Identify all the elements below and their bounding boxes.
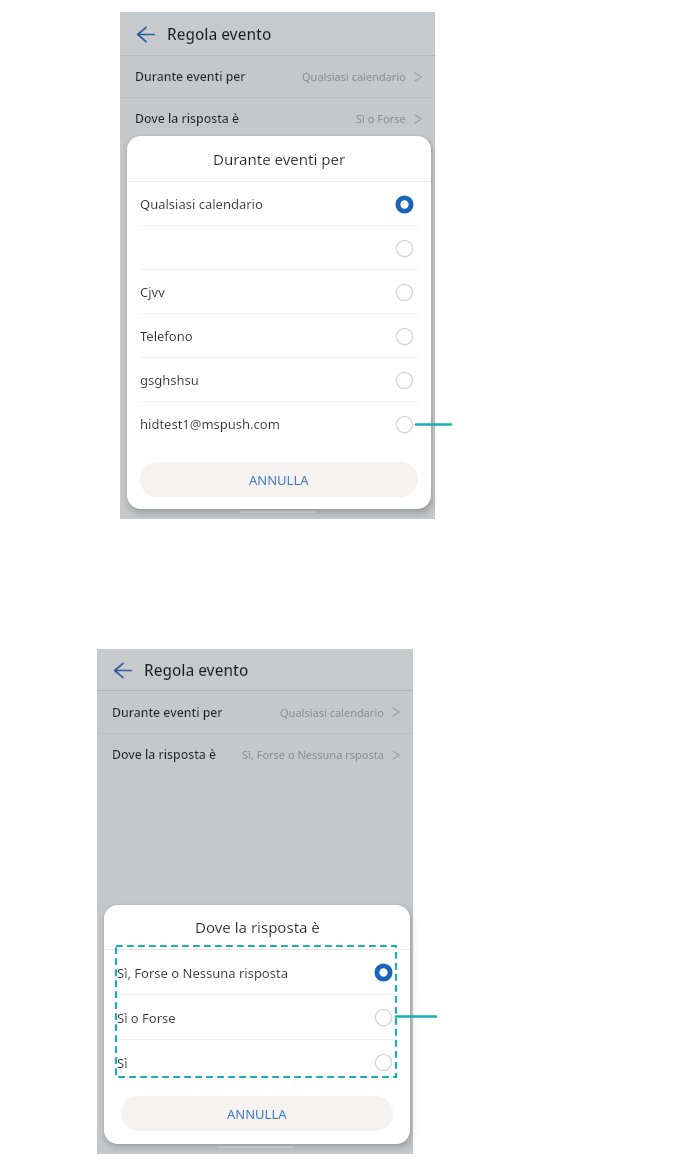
staticText: Regola evento (144, 660, 249, 681)
staticText: Sì o Forse (117, 1009, 176, 1027)
button[interactable]: Sì (104, 1040, 410, 1085)
button[interactable]: Back (137, 22, 155, 46)
staticText: Dove la risposta è (195, 917, 320, 937)
button[interactable]: Sì, Forse o Nessuna risposta (104, 950, 410, 995)
button[interactable]: Back (114, 658, 132, 682)
staticText: Sì (117, 1054, 128, 1072)
button[interactable]: ANNULLA (140, 462, 418, 497)
staticText: Sì o Forse (356, 111, 406, 126)
staticText: Dove la risposta è (135, 110, 240, 127)
staticText: Sì, Forse o Nessuna rsposta (242, 747, 384, 762)
staticText: gsghshsu (140, 371, 199, 389)
staticText: Durante eventi per (112, 704, 223, 721)
staticText: hidtest1@mspush.com (140, 415, 280, 433)
staticText: Dove la risposta è (112, 746, 217, 763)
button[interactable]: Telefono (127, 314, 431, 358)
staticText: Qualsiasi calendario (302, 69, 406, 84)
button[interactable] (127, 226, 431, 270)
button[interactable]: Qualsiasi calendario (127, 182, 431, 226)
button[interactable]: Durante eventi per (97, 691, 413, 733)
staticText: Cjvv (140, 283, 165, 301)
button[interactable]: Sì o Forse (104, 995, 410, 1040)
staticText: ANNULLA (249, 471, 309, 489)
staticText: ANNULLA (227, 1105, 287, 1123)
staticText: Telefono (140, 327, 193, 345)
button[interactable]: hidtest1@mspush.com (127, 402, 431, 446)
button[interactable]: Cjvv (127, 270, 431, 314)
staticText: Durante eventi per (135, 68, 246, 85)
staticText: Sì, Forse o Nessuna risposta (117, 964, 288, 982)
button[interactable]: Durante eventi per (120, 56, 435, 97)
staticText: Qualsiasi calendario (140, 195, 263, 213)
button[interactable]: Dove la risposta è (97, 734, 413, 775)
button[interactable]: ANNULLA (121, 1096, 393, 1131)
staticText: Durante eventi per (213, 149, 346, 169)
staticText: Regola evento (167, 24, 272, 45)
staticText: Qualsiasi calendario (280, 705, 384, 720)
button[interactable]: Dove la risposta è (120, 98, 435, 139)
button[interactable]: gsghshsu (127, 358, 431, 402)
